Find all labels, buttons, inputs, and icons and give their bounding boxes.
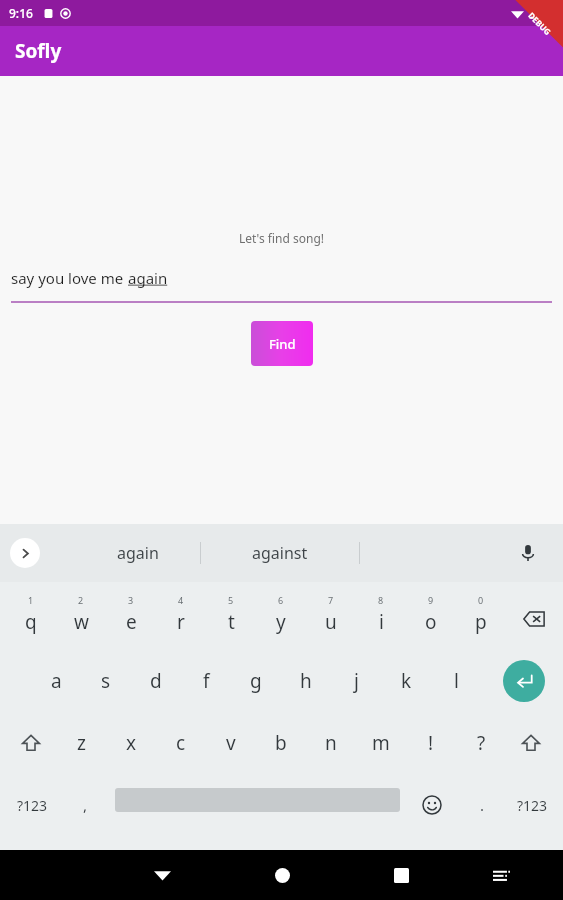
button[interactable]: More suggestions [10,538,40,568]
button[interactable]: say you love me [11,268,552,303]
button[interactable]: n [306,712,356,774]
staticText: 3 [128,594,134,606]
button[interactable]: 5 [206,588,256,650]
staticText: ? [477,730,486,756]
button[interactable]: 7 [306,588,356,650]
staticText: 9:16 [9,5,33,21]
button[interactable]: ?123 [504,774,560,836]
button[interactable]: 2 [56,588,106,650]
staticText: e [126,609,137,635]
staticText: 6 [278,594,284,606]
staticText: h [300,668,312,694]
button[interactable]: 1 [6,588,56,650]
staticText: t [228,609,235,635]
staticText: u [325,609,337,635]
staticText: g [250,668,262,694]
staticText: DEBUG [526,10,554,37]
button[interactable]: c [156,712,206,774]
staticText: c [176,730,186,756]
button[interactable]: Hide keyboard [140,853,184,897]
staticText: 4 [178,594,184,606]
staticText: w [74,609,89,635]
button[interactable]: against [205,524,355,582]
button[interactable]: Recents [379,853,423,897]
button[interactable]: 6 [256,588,306,650]
button[interactable]: ! [406,712,456,774]
button[interactable]: Sofly [0,26,563,76]
staticText: . [480,795,485,815]
staticText: Sofly [15,38,62,64]
staticText: s [101,668,111,694]
staticText: m [372,730,390,756]
button[interactable]: k [381,650,431,712]
staticText: , [83,795,88,815]
staticText: 8 [378,594,384,606]
staticText: f [203,668,210,694]
button[interactable]: 4 [156,588,206,650]
staticText: say you love me [11,268,128,288]
staticText: 7 [328,594,334,606]
staticText: 1 [28,594,34,606]
staticText: i [379,609,384,635]
button[interactable]: . [458,774,506,836]
staticText: 2 [78,594,84,606]
staticText: ?123 [17,796,48,815]
button[interactable]: v [206,712,256,774]
button[interactable]: Home [260,853,304,897]
button[interactable]: j [331,650,381,712]
button[interactable]: b [256,712,306,774]
staticText: ! [428,730,434,756]
staticText: 0 [478,594,484,606]
button[interactable]: Shift [6,712,56,774]
button[interactable]: Backspace [508,588,560,650]
button[interactable]: g [231,650,281,712]
button[interactable]: ? [456,712,506,774]
staticText: Let's find song! [0,230,563,246]
staticText: n [325,730,337,756]
button[interactable]: d [131,650,181,712]
staticText: 5 [228,594,234,606]
button[interactable]: 0 [456,588,506,650]
button[interactable]: Find [251,321,313,366]
staticText: v [226,730,236,756]
staticText: b [275,730,287,756]
staticText: a [51,668,62,694]
button[interactable]: 3 [106,588,156,650]
button[interactable]: l [431,650,481,712]
staticText: ?123 [517,796,548,815]
button[interactable]: x [106,712,156,774]
button[interactable]: 8 [356,588,406,650]
button[interactable]: s [81,650,131,712]
button[interactable]: z [56,712,106,774]
staticText: again [117,542,159,564]
staticText: k [401,668,412,694]
staticText: l [454,668,459,694]
staticText: Find [269,335,296,353]
button[interactable]: Emoji [408,774,456,836]
staticText: j [354,668,359,694]
button[interactable]: ?123 [4,774,60,836]
button[interactable]: Switch keyboard [481,855,521,895]
staticText: r [177,609,185,635]
staticText: d [150,668,162,694]
staticText: x [126,730,137,756]
staticText: o [425,609,437,635]
button[interactable]: m [356,712,406,774]
button[interactable]: Enter [493,650,555,712]
staticText: z [77,730,86,756]
button[interactable]: Shift [506,712,556,774]
staticText: 9 [428,594,434,606]
button[interactable]: again [75,524,200,582]
staticText: p [475,609,487,635]
staticText: q [25,609,37,635]
staticText: again [128,268,168,288]
button[interactable]: , [60,774,110,836]
button[interactable]: f [181,650,231,712]
staticText: against [252,542,308,564]
button[interactable]: 9 [406,588,456,650]
staticText: y [276,609,286,635]
button[interactable]: h [281,650,331,712]
button[interactable]: Voice input [513,538,543,568]
button[interactable]: a [31,650,81,712]
